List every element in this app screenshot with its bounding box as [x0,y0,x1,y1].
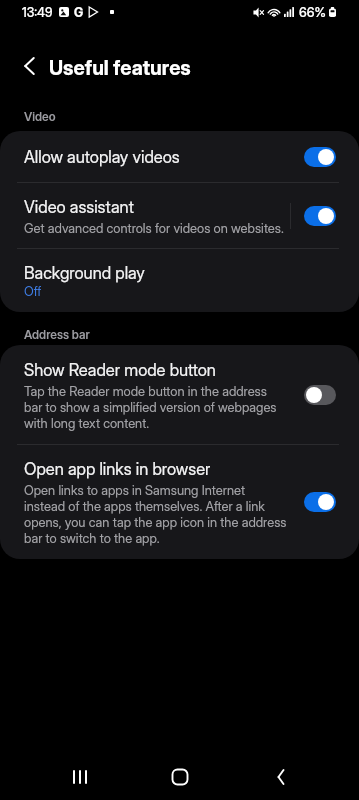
staticText: Allow autoplay videos [24,146,180,167]
staticText: Video assistant [24,196,134,217]
staticText: Background play [24,262,145,283]
staticText: Video [24,109,56,124]
button[interactable]: Navigate up [11,48,47,84]
button[interactable]: Video assistant [0,183,359,248]
button[interactable]: Home [156,754,204,800]
staticText: G [74,5,84,20]
button[interactable]: Open app links in browser [0,445,359,559]
button[interactable]: Show Reader mode button [0,345,359,444]
staticText: Show Reader mode button [24,359,216,380]
button[interactable]: Allow autoplay videos [0,131,359,182]
staticText: Address bar [24,327,90,342]
staticText: Off [24,283,42,299]
button[interactable]: Recent apps [56,754,104,800]
staticText: 13:49 [22,5,53,20]
button[interactable]: Switch on [304,492,336,512]
staticText: Open links to apps in Samsung Internet i… [24,482,288,546]
button[interactable]: Background play [0,249,359,312]
button[interactable]: Switch on [304,206,336,226]
button[interactable]: Switch off [304,385,336,405]
button[interactable]: Back [256,754,304,800]
staticText: Tap the Reader mode button in the addres… [24,383,288,431]
staticText: 66% [299,4,326,20]
staticText: Get advanced controls for videos on webs… [24,220,284,236]
button[interactable]: Switch on [304,147,336,167]
staticText: Useful features [49,56,191,80]
staticText: Open app links in browser [24,458,211,479]
